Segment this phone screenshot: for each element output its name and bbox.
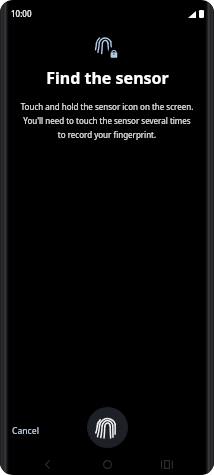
staticText: Touch and hold the sensor icon on the sc… [6, 101, 208, 140]
button[interactable]: Recents [156, 453, 178, 475]
button[interactable]: Back [36, 453, 58, 475]
button[interactable]: Fingerprint sensor [87, 407, 128, 448]
staticText: Cancel [12, 425, 39, 437]
button[interactable]: Home [96, 453, 118, 475]
staticText: 10:00 [11, 8, 32, 19]
button[interactable]: Cancel [4, 419, 47, 443]
staticText: Find the sensor [46, 67, 169, 89]
